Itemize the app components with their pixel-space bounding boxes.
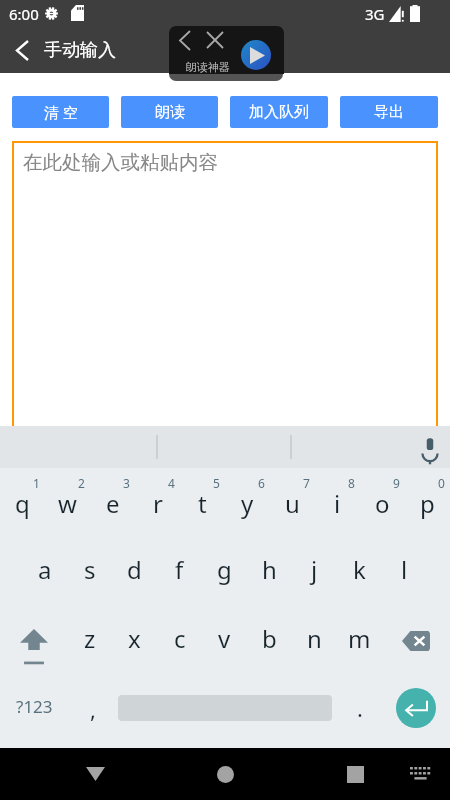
staticText: u [285,487,300,520]
staticText: t [198,487,207,520]
staticText: d [127,553,142,586]
button[interactable]: 5 [180,468,225,537]
button[interactable]: Backspace [382,606,450,675]
staticText: . [357,693,363,723]
staticText: e [106,487,120,520]
button[interactable]: Back [173,26,197,54]
staticText: f [175,553,184,586]
staticText: i [334,487,341,520]
button[interactable]: Play [241,40,271,70]
staticText: 清 空 [44,102,78,122]
button[interactable]: g [202,537,247,606]
button[interactable]: 8 [315,468,360,537]
staticText: 6 [258,475,265,491]
button[interactable]: 加入队列 [230,96,328,128]
button[interactable]: 0 [405,468,450,537]
button[interactable]: 3 [90,468,135,537]
staticText: k [353,553,366,586]
button[interactable]: s [67,537,112,606]
staticText: x [128,622,141,655]
staticText: j [311,553,318,586]
staticText: v [218,622,231,655]
button[interactable]: 1 [0,468,45,537]
staticText: a [38,553,52,586]
staticText: 朗读神器 [186,60,230,74]
staticText: l [401,553,408,586]
staticText: 7 [303,475,310,491]
staticText: r [153,487,163,520]
staticText: q [15,487,30,520]
button[interactable]: Switch keyboard [400,748,440,800]
button[interactable]: Back [62,748,128,800]
button[interactable]: k [337,537,382,606]
staticText: g [217,553,232,586]
button[interactable]: 导出 [340,96,438,128]
button[interactable]: Back [0,28,44,73]
button[interactable] [118,675,332,744]
staticText: 导出 [374,103,404,122]
button[interactable]: j [292,537,337,606]
button[interactable]: , [68,675,118,744]
staticText: b [262,622,277,655]
staticText: m [348,622,371,655]
button[interactable]: 清 空 [12,96,109,128]
button[interactable]: 2 [45,468,90,537]
staticText: 0 [438,475,445,491]
button[interactable]: c [157,606,202,675]
staticText: 8 [348,475,355,491]
staticText: 朗读 [155,103,185,122]
button[interactable]: h [247,537,292,606]
button[interactable]: l [382,537,427,606]
button[interactable]: Voice input [414,426,446,468]
staticText: o [375,487,390,520]
button[interactable]: m [337,606,382,675]
button[interactable]: Enter [382,675,450,744]
button[interactable]: a [23,537,67,606]
staticText: w [58,487,77,520]
staticText: 3G [365,4,385,24]
button[interactable]: v [202,606,247,675]
staticText: 1 [33,475,40,491]
staticText: 2 [78,475,85,491]
staticText: 手动输入 [44,39,116,62]
button[interactable]: Shift [0,606,68,675]
staticText: n [307,622,322,655]
button[interactable]: n [292,606,337,675]
button[interactable]: . [332,675,382,744]
button[interactable]: ?123 [0,675,68,744]
button[interactable]: Home [192,748,258,800]
staticText: 5 [213,475,220,491]
button[interactable]: 7 [270,468,315,537]
staticText: s [84,553,96,586]
button[interactable]: Close [202,26,228,54]
button[interactable]: 朗读 [121,96,218,128]
button[interactable]: 6 [225,468,270,537]
button[interactable]: z [68,606,112,675]
staticText: 9 [393,475,400,491]
staticText: 在此处输入或粘贴内容 [23,150,218,175]
staticText: h [262,553,277,586]
staticText: 加入队列 [249,103,309,122]
staticText: 3 [123,475,130,491]
button[interactable]: Recents [322,748,388,800]
button[interactable]: f [157,537,202,606]
staticText: ?123 [16,695,53,718]
staticText: 6:00 [9,4,39,24]
staticText: , [90,694,96,724]
button[interactable]: 在此处输入或粘贴内容 [12,141,438,431]
staticText: p [420,487,435,520]
button[interactable]: 4 [135,468,180,537]
staticText: c [174,622,186,655]
button[interactable]: 9 [360,468,405,537]
staticText: y [241,487,254,520]
button[interactable]: x [112,606,157,675]
staticText: z [84,622,96,655]
staticText: 4 [168,475,175,491]
button[interactable]: b [247,606,292,675]
button[interactable]: d [112,537,157,606]
